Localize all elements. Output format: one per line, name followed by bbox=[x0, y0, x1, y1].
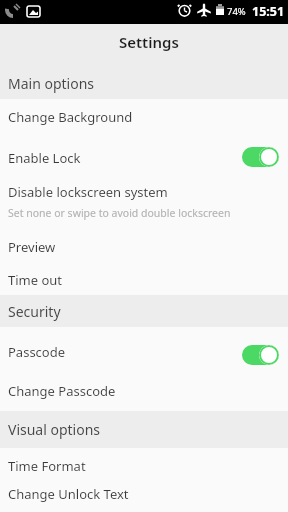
button[interactable]: Disable lockscreen system bbox=[0, 177, 288, 229]
button[interactable]: Time out bbox=[0, 264, 288, 295]
button[interactable]: Enable Lock bbox=[0, 138, 288, 177]
staticText: Set none or swipe to avoid double locksc… bbox=[8, 206, 231, 220]
button[interactable]: Preview bbox=[0, 229, 288, 264]
button[interactable]: Time Format bbox=[0, 448, 288, 484]
staticText: Enable Lock bbox=[8, 149, 81, 167]
staticText: Change Background bbox=[8, 108, 133, 126]
staticText: Visual options bbox=[8, 420, 101, 439]
button[interactable] bbox=[242, 147, 279, 167]
button[interactable]: Passcode bbox=[0, 327, 288, 375]
staticText: Main options bbox=[8, 74, 95, 93]
staticText: Change Passcode bbox=[8, 382, 116, 400]
staticText: Passcode bbox=[8, 343, 66, 361]
staticText: Preview bbox=[8, 238, 56, 256]
staticText: Time Format bbox=[8, 457, 86, 475]
button[interactable]: Change Background bbox=[0, 99, 288, 138]
button[interactable]: Change Passcode bbox=[0, 375, 288, 411]
staticText: Settings bbox=[119, 32, 179, 52]
staticText: Change Unlock Text bbox=[8, 485, 129, 503]
staticText: Security bbox=[8, 302, 61, 321]
staticText: 74% bbox=[227, 5, 246, 18]
staticText: 15:51 bbox=[252, 3, 285, 20]
button[interactable]: Change Unlock Text bbox=[0, 484, 288, 512]
button[interactable] bbox=[242, 345, 279, 365]
staticText: Time out bbox=[8, 271, 63, 289]
staticText: Disable lockscreen system bbox=[8, 183, 168, 201]
